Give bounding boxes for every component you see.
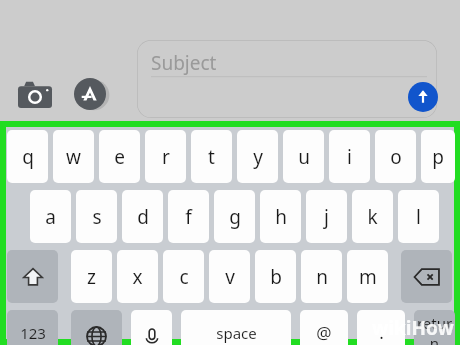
button[interactable]: l	[398, 190, 439, 243]
button[interactable]: y	[237, 130, 278, 183]
button[interactable]: Shift	[7, 250, 58, 303]
staticText: d	[137, 204, 149, 230]
staticText: e	[114, 144, 125, 170]
button[interactable]: x	[117, 250, 158, 303]
button[interactable]: h	[260, 190, 301, 243]
staticText: o	[390, 144, 402, 170]
button[interactable]: Subject	[137, 40, 437, 118]
button[interactable]: u	[283, 130, 324, 183]
button[interactable]: m	[347, 250, 388, 303]
button[interactable]: 123	[7, 310, 58, 345]
button[interactable]: Backspace	[401, 250, 452, 303]
button[interactable]: return	[414, 310, 455, 345]
staticText: f	[185, 204, 192, 230]
staticText: @	[316, 321, 332, 344]
staticText: a	[45, 204, 56, 230]
staticText: 123	[20, 323, 46, 343]
button[interactable]: k	[352, 190, 393, 243]
button[interactable]: e	[99, 130, 140, 183]
button[interactable]: Dictate	[131, 310, 172, 345]
staticText: q	[22, 144, 34, 170]
staticText: z	[87, 264, 96, 290]
button[interactable]: App Store	[74, 78, 106, 110]
staticText: Subject	[151, 50, 217, 76]
staticText: y	[253, 144, 263, 170]
staticText: g	[229, 204, 241, 230]
staticText: p	[432, 144, 444, 170]
button[interactable]: b	[255, 250, 296, 303]
staticText: c	[179, 264, 189, 290]
staticText: h	[275, 204, 287, 230]
button[interactable]: n	[301, 250, 342, 303]
button[interactable]: t	[191, 130, 232, 183]
button[interactable]: v	[209, 250, 250, 303]
button[interactable]: w	[53, 130, 94, 183]
staticText: wikiHow	[372, 315, 454, 341]
staticText: l	[416, 204, 421, 230]
button[interactable]: s	[76, 190, 117, 243]
staticText: v	[225, 264, 235, 290]
button[interactable]: j	[306, 190, 347, 243]
staticText: t	[208, 144, 215, 170]
button[interactable]: a	[30, 190, 71, 243]
staticText: k	[367, 204, 378, 230]
button[interactable]: space	[181, 310, 291, 345]
staticText: m	[359, 264, 377, 290]
staticText: x	[132, 264, 143, 290]
button[interactable]: Send	[408, 82, 438, 112]
staticText: return	[414, 313, 455, 345]
button[interactable]: c	[163, 250, 204, 303]
button[interactable]: q	[7, 130, 48, 183]
button[interactable]: r	[145, 130, 186, 183]
button[interactable]: d	[122, 190, 163, 243]
button[interactable]: g	[214, 190, 255, 243]
staticText: .	[379, 321, 384, 344]
button[interactable]: p	[421, 130, 455, 183]
staticText: space	[216, 323, 257, 343]
staticText: i	[347, 144, 352, 170]
staticText: u	[298, 144, 310, 170]
staticText: j	[324, 204, 329, 230]
button[interactable]: z	[71, 250, 112, 303]
button[interactable]: f	[168, 190, 209, 243]
staticText: w	[66, 144, 81, 170]
button[interactable]: Camera	[18, 80, 52, 108]
button[interactable]: i	[329, 130, 370, 183]
button[interactable]: Change keyboard language	[71, 310, 122, 345]
staticText: s	[92, 204, 102, 230]
button[interactable]: .	[357, 310, 405, 345]
staticText: r	[162, 144, 170, 170]
staticText: n	[316, 264, 328, 290]
button[interactable]: @	[300, 310, 348, 345]
staticText: b	[270, 264, 282, 290]
button[interactable]: o	[375, 130, 416, 183]
